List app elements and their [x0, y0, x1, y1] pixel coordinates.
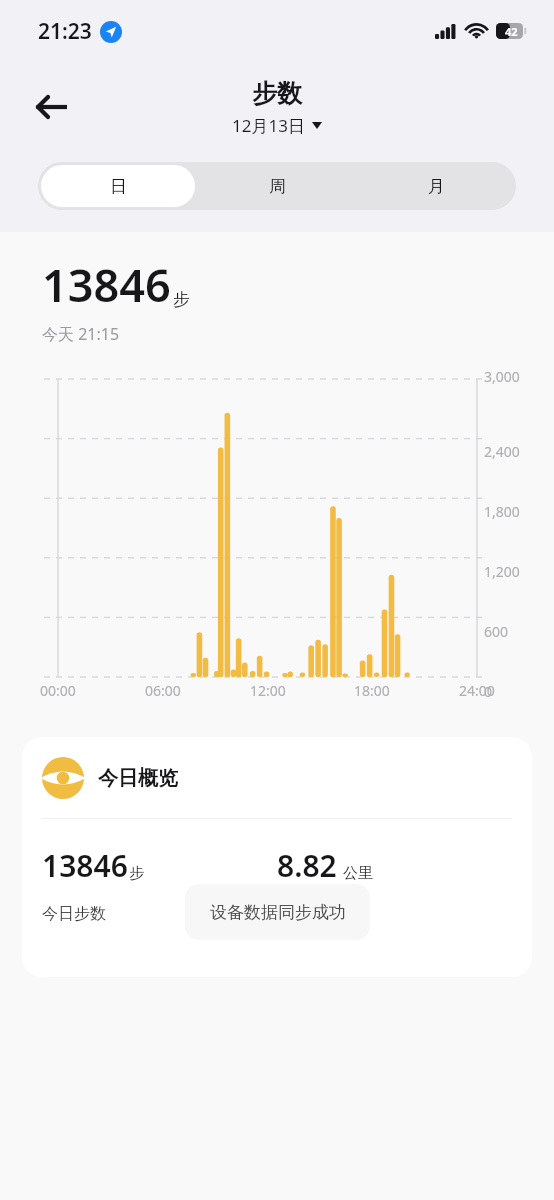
staticText: 今日步数 — [42, 904, 106, 924]
staticText: 600 — [484, 622, 509, 641]
staticText: 月 — [428, 176, 445, 197]
staticText: 12:00 — [250, 681, 286, 700]
staticText: 日 — [110, 176, 127, 197]
staticText: 13846 — [42, 845, 128, 886]
staticText: 1,800 — [484, 502, 520, 521]
staticText: 21:23 — [38, 17, 92, 46]
button[interactable]: 今日概览 — [22, 737, 532, 977]
staticText: 设备数据同步成功 — [210, 902, 346, 923]
button[interactable]: 周 — [201, 165, 354, 207]
staticText: 步 — [129, 864, 144, 883]
staticText: 今日概览 — [98, 766, 178, 791]
button[interactable]: 月 — [360, 165, 513, 207]
staticText: 2,400 — [484, 442, 520, 461]
button[interactable]: Back — [22, 77, 82, 137]
staticText: 06:00 — [145, 681, 181, 700]
staticText: 24:00 — [459, 681, 495, 700]
button[interactable]: 日 — [41, 165, 195, 207]
staticText: 今天 21:15 — [42, 323, 120, 345]
staticText: 步 — [173, 289, 190, 310]
staticText: 3,000 — [484, 367, 520, 386]
staticText: 18:00 — [354, 681, 390, 700]
staticText: 13846 — [42, 254, 171, 315]
staticText: 00:00 — [40, 681, 76, 700]
staticText: 42 — [505, 24, 518, 39]
staticText: 公里 — [343, 864, 373, 883]
staticText: 周 — [269, 176, 286, 197]
staticText: 12月13日 — [232, 114, 305, 137]
button[interactable]: 12月13日 — [232, 114, 322, 137]
staticText: 步数 — [252, 78, 302, 109]
staticText: 8.82 — [277, 845, 337, 886]
staticText: 0 — [484, 682, 493, 701]
staticText: 1,200 — [484, 562, 520, 581]
